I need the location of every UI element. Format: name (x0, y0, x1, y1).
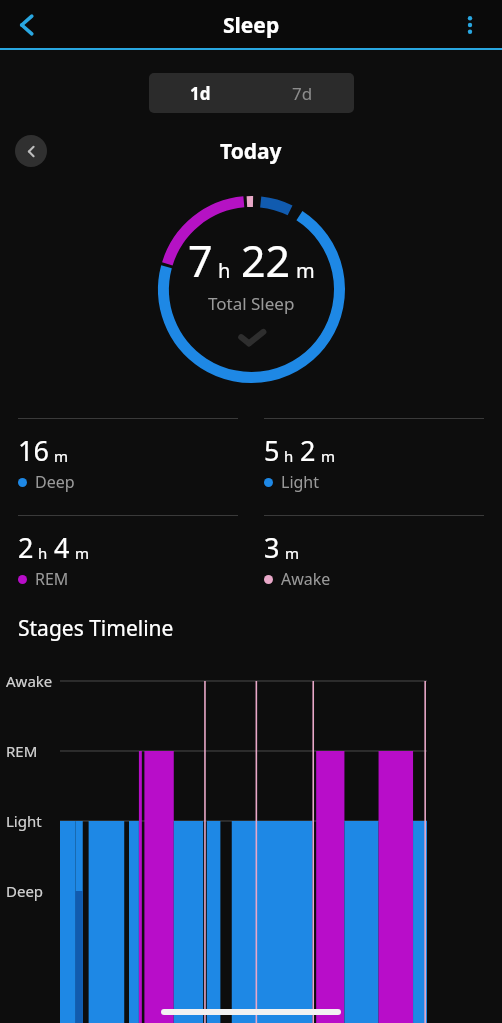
staticText: 2 (300, 432, 316, 469)
staticText: Deep (6, 881, 44, 901)
staticText: Today (220, 137, 282, 166)
button[interactable]: 1d (149, 73, 251, 113)
staticText: Sleep (223, 11, 280, 40)
staticText: Light (281, 471, 320, 493)
button[interactable]: 2 (18, 515, 238, 590)
button[interactable]: Previous day (15, 135, 47, 167)
button[interactable]: 5 (264, 418, 484, 493)
staticText: 22 (241, 231, 291, 290)
staticText: 5 (264, 432, 280, 469)
button[interactable]: 3 (264, 515, 484, 590)
staticText: Light (6, 811, 42, 831)
staticText: REM (6, 741, 38, 761)
staticText: 4 (54, 529, 70, 566)
staticText: 7d (292, 82, 313, 105)
staticText: m (54, 446, 69, 466)
staticText: 3 (264, 529, 280, 566)
button[interactable]: 16 (18, 418, 238, 493)
staticText: Deep (35, 471, 75, 493)
staticText: Awake (6, 671, 53, 691)
button[interactable]: Back (4, 2, 50, 48)
staticText: 2 (18, 529, 34, 566)
staticText: Total Sleep (208, 292, 295, 315)
staticText: Awake (281, 568, 331, 590)
staticText: 1d (190, 82, 211, 105)
staticText: m (321, 446, 336, 466)
button[interactable]: 7d (251, 73, 354, 113)
staticText: 16 (18, 432, 49, 469)
staticText: m (296, 257, 315, 284)
staticText: REM (35, 568, 69, 590)
staticText: Stages Timeline (18, 614, 174, 643)
staticText: h (284, 446, 294, 466)
staticText: m (75, 543, 90, 563)
button[interactable]: More options (448, 3, 492, 47)
staticText: 7 (188, 231, 213, 290)
staticText: h (218, 257, 231, 284)
staticText: m (285, 543, 300, 563)
staticText: h (38, 543, 48, 563)
